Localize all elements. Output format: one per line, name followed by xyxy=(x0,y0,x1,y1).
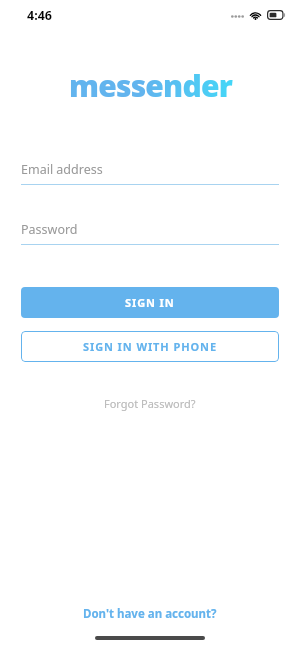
staticText: Email address xyxy=(21,161,103,178)
button[interactable]: Don't have an account? xyxy=(73,602,227,626)
button[interactable]: SIGN IN WITH PHONE xyxy=(21,331,279,362)
other: Cellular signal xyxy=(231,12,244,18)
staticText: Password xyxy=(21,221,78,238)
staticText: SIGN IN WITH PHONE xyxy=(83,339,217,354)
other: Wi-Fi xyxy=(249,10,262,20)
staticText: 4:46 xyxy=(27,7,52,24)
button[interactable]: Forgot Password? xyxy=(96,393,204,414)
staticText: Forgot Password? xyxy=(104,396,196,411)
staticText: Don't have an account? xyxy=(83,606,217,622)
other: Battery xyxy=(267,10,286,20)
button[interactable]: SIGN IN xyxy=(21,287,279,318)
staticText: SIGN IN xyxy=(125,295,175,310)
staticText: messender xyxy=(69,65,232,106)
